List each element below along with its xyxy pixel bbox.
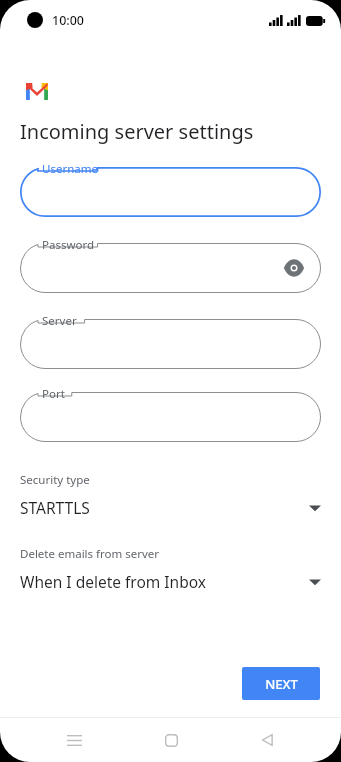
button[interactable]: Username bbox=[20, 167, 321, 217]
button[interactable]: Server bbox=[20, 319, 321, 369]
staticText: Password bbox=[42, 237, 95, 253]
staticText: Username bbox=[42, 161, 98, 177]
staticText: Incoming server settings bbox=[20, 118, 254, 145]
staticText: When I delete from Inbox bbox=[20, 571, 309, 592]
button[interactable]: Back bbox=[245, 718, 289, 762]
button[interactable]: Password bbox=[20, 243, 321, 293]
button[interactable]: NEXT bbox=[242, 667, 320, 700]
button[interactable]: Recent apps bbox=[52, 718, 96, 762]
button[interactable]: Port bbox=[20, 392, 321, 442]
staticText: Server bbox=[42, 313, 77, 329]
staticText: NEXT bbox=[265, 675, 298, 693]
staticText: STARTTLS bbox=[20, 497, 309, 518]
staticText: 10:00 bbox=[52, 12, 85, 29]
staticText: Delete emails from server bbox=[20, 546, 160, 562]
button[interactable]: Show password bbox=[281, 255, 307, 281]
button[interactable]: Security type bbox=[0, 472, 341, 518]
staticText: Security type bbox=[20, 472, 90, 488]
button[interactable]: Delete emails from server bbox=[0, 546, 341, 592]
button[interactable]: Home bbox=[149, 718, 193, 762]
staticText: Port bbox=[42, 386, 65, 402]
